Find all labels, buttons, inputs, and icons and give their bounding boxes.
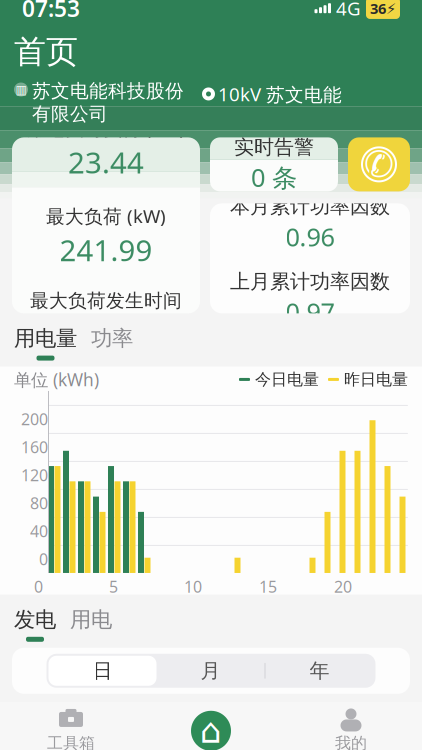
staticText: 4G <box>336 0 361 21</box>
staticText: 用电实时负荷 (kW) <box>27 116 185 141</box>
button[interactable]: 功率 <box>91 325 133 361</box>
staticText: 实时告警 <box>234 135 314 159</box>
staticText: 上月累计功率因数 <box>230 269 390 294</box>
staticText: 10kV 苏文电能 <box>218 81 342 106</box>
staticText: 日 <box>92 658 112 683</box>
staticText: 最大负荷 (kW) <box>46 203 166 228</box>
staticText: 发电 <box>14 607 56 633</box>
staticText: 年 <box>309 658 329 683</box>
staticText: ✆ <box>364 144 394 185</box>
staticText: 241.99 <box>59 230 152 269</box>
button[interactable]: 年 <box>265 656 373 686</box>
staticText: 本月累计功率因数 <box>230 194 390 219</box>
button[interactable]: 拨打电话 <box>348 137 410 191</box>
staticText: 36⚡︎ <box>370 0 396 18</box>
staticText: 2024-07-22 05:51:51 <box>15 316 196 341</box>
staticText: 200 <box>21 408 48 429</box>
staticText: 0 <box>34 576 43 597</box>
staticText: 0.97 <box>285 295 334 328</box>
staticText: 苏文电能科技股份有限公司 <box>32 79 184 125</box>
button[interactable]: 我的 <box>281 708 421 750</box>
button[interactable]: 实时告警 <box>210 137 338 191</box>
staticText: 40 <box>30 520 48 541</box>
staticText: 5 <box>109 576 118 597</box>
staticText: 功率 <box>91 325 133 352</box>
staticText: 单位 (kWh) <box>14 368 99 391</box>
staticText: 首页 <box>14 32 78 71</box>
staticText: 工具箱 <box>47 733 95 750</box>
staticText: 10 <box>184 576 202 597</box>
button[interactable]: 日 <box>48 656 156 686</box>
button[interactable]: 用电 <box>70 607 112 642</box>
button[interactable]: 工具箱 <box>1 708 141 750</box>
staticText: 用电 <box>70 607 112 633</box>
button[interactable]: 首页 <box>141 708 281 750</box>
staticText: 用电量 <box>14 325 77 352</box>
staticText: 月 <box>200 658 220 683</box>
button[interactable]: 月 <box>156 656 264 686</box>
staticText: ▥ <box>15 83 26 96</box>
button[interactable]: 发电 <box>14 607 56 642</box>
staticText: 120 <box>21 464 48 485</box>
staticText: 15 <box>259 576 277 597</box>
staticText: 0.96 <box>285 220 334 253</box>
staticText: 今日电量 <box>255 370 319 389</box>
staticText: ⌂ <box>200 711 222 750</box>
staticText: 160 <box>21 436 48 457</box>
staticText: 07:53 <box>22 0 80 23</box>
staticText: 0 <box>39 548 48 569</box>
staticText: 23.44 <box>68 143 144 182</box>
staticText: 20 <box>334 576 352 597</box>
button[interactable]: 用电量 <box>14 325 77 361</box>
staticText: 0 条 <box>251 160 297 194</box>
staticText: 最大负荷发生时间 <box>30 289 182 312</box>
staticText: 80 <box>30 492 48 513</box>
staticText: 昨日电量 <box>344 370 408 389</box>
staticText: 我的 <box>335 733 367 750</box>
